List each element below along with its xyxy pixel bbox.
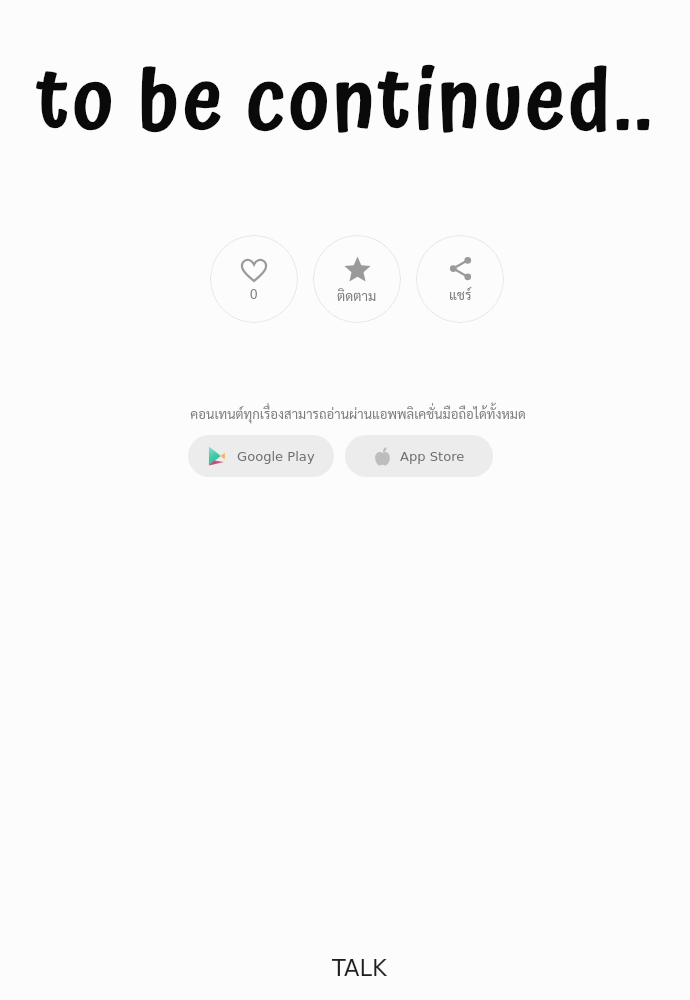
staticText: TALK [332, 955, 387, 981]
button[interactable]: Share [416, 235, 504, 323]
staticText: App Store [400, 449, 465, 464]
button[interactable]: App Store [345, 435, 493, 477]
staticText: แชร์ [449, 286, 472, 304]
staticText: Google Play [237, 449, 315, 464]
staticText: 0 [250, 285, 258, 303]
button[interactable]: Follow [313, 235, 401, 323]
staticText: คอนเทนต์ทุกเรื่องสามารถอ่านผ่านแอพพลิเคช… [190, 405, 526, 422]
button[interactable]: Like [210, 235, 298, 323]
staticText: to be continued.. [36, 36, 656, 172]
button[interactable]: Google Play [188, 435, 334, 477]
staticText: to be continued.. [36, 36, 656, 172]
staticText: ติดตาม [337, 287, 377, 305]
